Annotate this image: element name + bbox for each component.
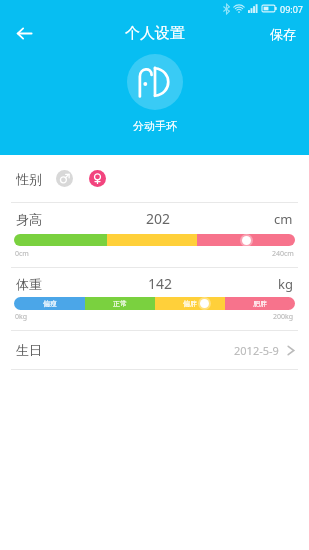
button[interactable]: Male (56, 170, 73, 187)
button[interactable]: Back (0, 17, 48, 50)
staticText: 生日 (16, 342, 42, 358)
button[interactable]: 生日 (0, 331, 309, 369)
staticText: 0cm (15, 249, 29, 259)
staticText: 0kg (15, 312, 28, 322)
staticText: 个人设置 (125, 24, 185, 43)
staticText: 偏胖 (183, 299, 197, 308)
button[interactable]: 身高 (0, 203, 309, 268)
staticText: 保存 (270, 26, 296, 42)
staticText: 2012-5-9 (234, 343, 279, 358)
staticText: 肥胖 (253, 299, 267, 308)
staticText: 200kg (273, 312, 294, 322)
staticText: 202 (146, 209, 171, 228)
staticText: 身高 (16, 211, 42, 227)
staticText: 09:07 (280, 3, 304, 15)
staticText: 性别 (16, 171, 42, 187)
staticText: 体重 (16, 276, 42, 292)
button[interactable]: Female (89, 170, 106, 187)
staticText: cm (274, 210, 293, 228)
staticText: 142 (148, 274, 173, 293)
button[interactable]: 保存 (256, 17, 309, 50)
staticText: 正常 (113, 299, 127, 308)
staticText: 分动手环 (133, 119, 177, 133)
staticText: 偏瘦 (43, 299, 57, 308)
staticText: 240cm (272, 249, 294, 259)
button[interactable]: 体重 (0, 268, 309, 331)
staticText: kg (278, 275, 293, 293)
